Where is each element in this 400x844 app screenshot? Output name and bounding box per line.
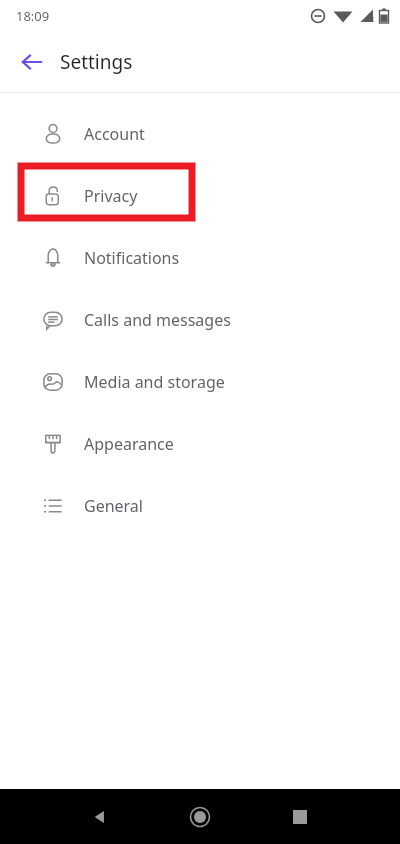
button[interactable]: Media and storage (0, 351, 400, 413)
button[interactable]: Notifications (0, 227, 400, 289)
button[interactable]: General (0, 475, 400, 537)
button[interactable]: Account (0, 103, 400, 165)
staticText: Appearance (84, 433, 174, 455)
staticText: Privacy (84, 185, 138, 207)
staticText: Media and storage (84, 371, 225, 393)
staticText: 18:09 (16, 7, 50, 25)
staticText: Notifications (84, 247, 180, 269)
staticText: Calls and messages (84, 309, 231, 331)
button[interactable]: Appearance (0, 413, 400, 475)
button[interactable]: Recent apps (278, 795, 322, 839)
button[interactable]: Home (178, 795, 222, 839)
button[interactable]: Calls and messages (0, 289, 400, 351)
button[interactable]: Back (12, 42, 52, 82)
staticText: General (84, 495, 143, 517)
staticText: Account (84, 123, 145, 145)
button[interactable]: Privacy (0, 165, 400, 227)
button[interactable]: Back (78, 795, 122, 839)
staticText: Settings (60, 49, 133, 75)
